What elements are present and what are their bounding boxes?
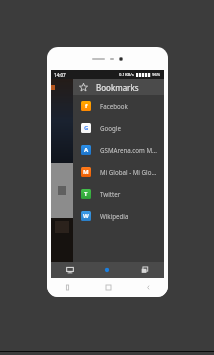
staticText: 14:07 [54, 72, 66, 78]
staticText: 0.1KB/s [119, 72, 134, 78]
button[interactable]: Back [128, 278, 168, 297]
staticText: T [84, 190, 88, 198]
staticText: Bookmarks [96, 82, 139, 93]
button[interactable]: Recents [47, 278, 88, 297]
staticText: Facebook [100, 102, 128, 110]
staticText: M [83, 168, 89, 176]
button[interactable]: M [73, 161, 164, 183]
staticText: GSMArena.com Mobile - Home [100, 146, 159, 154]
button[interactable]: A [73, 139, 164, 161]
staticText: Wikipedia [100, 212, 129, 220]
button[interactable]: G [73, 117, 164, 139]
button[interactable]: f [73, 95, 164, 117]
staticText: f [85, 102, 88, 110]
staticText: Twitter [100, 190, 121, 198]
button[interactable]: Desktop site [51, 262, 88, 278]
button[interactable]: Home [88, 278, 128, 297]
button[interactable]: Home [88, 262, 126, 278]
staticText: G [84, 124, 89, 132]
staticText: A [84, 146, 89, 154]
staticText: 96% [152, 72, 161, 78]
button[interactable]: Bookmarks [73, 79, 164, 95]
button[interactable]: T [73, 183, 164, 205]
button[interactable]: W [73, 205, 164, 227]
button[interactable]: Tabs [126, 262, 164, 278]
other: Bookmarks [79, 83, 88, 92]
staticText: Mi Global - Mi Global Home [100, 168, 159, 176]
staticText: Google [100, 124, 121, 132]
staticText: W [83, 212, 89, 220]
